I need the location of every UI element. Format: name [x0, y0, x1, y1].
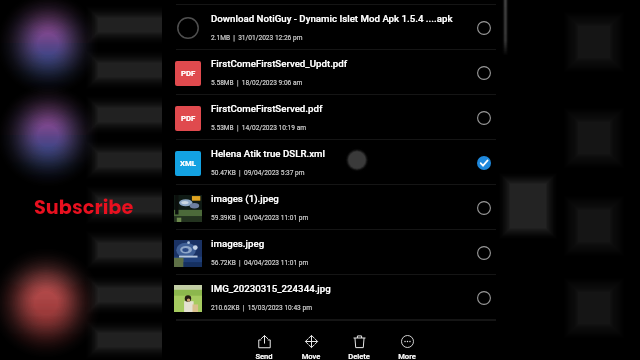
staticText: 59.39KB | 04/04/2023 11:01 pm [211, 214, 309, 222]
button[interactable]: Select file [472, 196, 495, 219]
staticText: PDF [181, 69, 196, 78]
staticText: FirstComeFirstServed.pdf [211, 103, 323, 114]
staticText: Download NotiGuy - Dynamic Islet Mod Apk… [211, 13, 453, 24]
button[interactable]: Delete [337, 335, 381, 360]
staticText: 5.53MB | 14/02/2023 10:19 am [211, 124, 307, 132]
button[interactable]: Select file [472, 241, 495, 264]
button[interactable]: PDF [162, 50, 496, 95]
button[interactable]: Move [289, 335, 333, 360]
staticText: images.jpeg [211, 238, 265, 249]
staticText: 210.62KB | 15/03/2023 10:43 pm [211, 304, 312, 312]
staticText: Helena Atik true DSLR.xml [211, 148, 325, 159]
staticText: Subscribe [34, 194, 134, 221]
button[interactable]: Send [242, 335, 286, 360]
staticText: Send [242, 352, 286, 360]
staticText: FirstComeFirstServed_Updt.pdf [211, 58, 348, 69]
button[interactable]: XML [162, 140, 496, 185]
button[interactable]: Select file [472, 106, 495, 129]
staticText: IMG_20230315_224344.jpg [211, 283, 331, 294]
staticText: 2.1MB | 31/01/2023 12:26 pm [211, 34, 303, 42]
button[interactable]: Select file [472, 61, 495, 84]
staticText: Delete [337, 352, 381, 360]
staticText: XML [180, 159, 197, 168]
button[interactable]: More [385, 335, 429, 360]
button[interactable]: images.jpeg [162, 230, 496, 275]
button[interactable]: PDF [162, 95, 496, 140]
button[interactable]: Select file [472, 151, 495, 174]
staticText: More [385, 352, 429, 360]
staticText: PDF [181, 114, 196, 123]
staticText: Move [289, 352, 333, 360]
staticText: images (1).jpeg [211, 193, 279, 204]
staticText: 5.58MB | 18/02/2023 9:06 am [211, 79, 303, 87]
button[interactable]: Download NotiGuy - Dynamic Islet Mod Apk… [162, 5, 496, 50]
button[interactable]: IMG_20230315_224344.jpg [162, 275, 496, 320]
staticText: 56.72KB | 04/04/2023 11:01 pm [211, 259, 309, 267]
button[interactable]: images (1).jpeg [162, 185, 496, 230]
button[interactable]: Select file [472, 16, 495, 39]
staticText: 50.47KB | 09/04/2023 5:37 pm [211, 169, 305, 177]
button[interactable]: Select file [472, 286, 495, 309]
